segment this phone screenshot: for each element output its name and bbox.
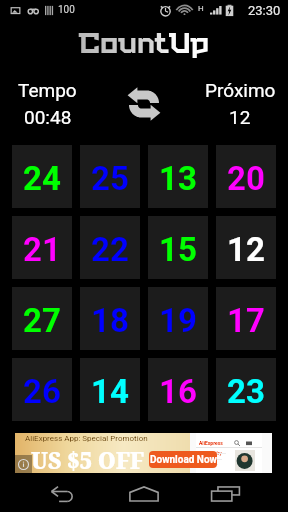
staticText: Download Now	[150, 454, 217, 466]
button[interactable]: 20	[216, 145, 276, 208]
button[interactable]: 25	[80, 145, 140, 208]
staticText: 16	[159, 372, 197, 411]
staticText: 100	[58, 4, 75, 16]
staticText: 21	[23, 230, 61, 269]
button[interactable]: Back	[44, 477, 84, 511]
staticText: 12	[227, 230, 265, 269]
button[interactable]: Recent apps	[205, 477, 245, 511]
button[interactable]: 27	[12, 287, 72, 350]
button[interactable]: 24	[12, 145, 72, 208]
staticText: 12	[229, 106, 251, 128]
button[interactable]: 12	[216, 216, 276, 279]
staticText: 00:48	[24, 106, 72, 128]
staticText: Próximo	[205, 79, 276, 101]
button[interactable]: Home	[124, 477, 164, 511]
button[interactable]: 18	[80, 287, 140, 350]
button[interactable]: 26	[12, 358, 72, 421]
staticText: US $5 OFF	[31, 445, 145, 476]
staticText: 20	[227, 159, 265, 198]
staticText: 22	[91, 230, 129, 269]
staticText: H	[198, 4, 204, 13]
button[interactable]: Trocar	[125, 85, 163, 123]
staticText: 15	[159, 230, 197, 269]
staticText: cal Jewelry	[197, 450, 222, 456]
staticText: 27	[23, 301, 61, 340]
staticText: 18	[91, 301, 129, 340]
button[interactable]: 16	[148, 358, 208, 421]
button[interactable]: AliExpress	[15, 433, 272, 473]
staticText: AliExpress App: Special Promotion	[25, 434, 148, 443]
button[interactable]: 13	[148, 145, 208, 208]
staticText: CountUp	[79, 24, 209, 66]
button[interactable]: 21	[12, 216, 72, 279]
staticText: 14	[91, 372, 129, 411]
button[interactable]: 23	[216, 358, 276, 421]
button[interactable]: 17	[216, 287, 276, 350]
button[interactable]: 19	[148, 287, 208, 350]
button[interactable]: 15	[148, 216, 208, 279]
staticText: 24	[23, 159, 61, 198]
button[interactable]: Download Now	[149, 451, 217, 468]
staticText: AliExpress	[199, 440, 223, 446]
staticText: Tempo	[18, 79, 77, 101]
staticText: 17	[227, 301, 265, 340]
staticText: 26	[23, 372, 61, 411]
staticText: 23	[227, 372, 265, 411]
button[interactable]: 22	[80, 216, 140, 279]
staticText: 13	[159, 159, 197, 198]
staticText: 19	[159, 301, 197, 340]
button[interactable]: 14	[80, 358, 140, 421]
staticText: 25	[91, 159, 129, 198]
staticText: 23:30	[248, 3, 281, 18]
